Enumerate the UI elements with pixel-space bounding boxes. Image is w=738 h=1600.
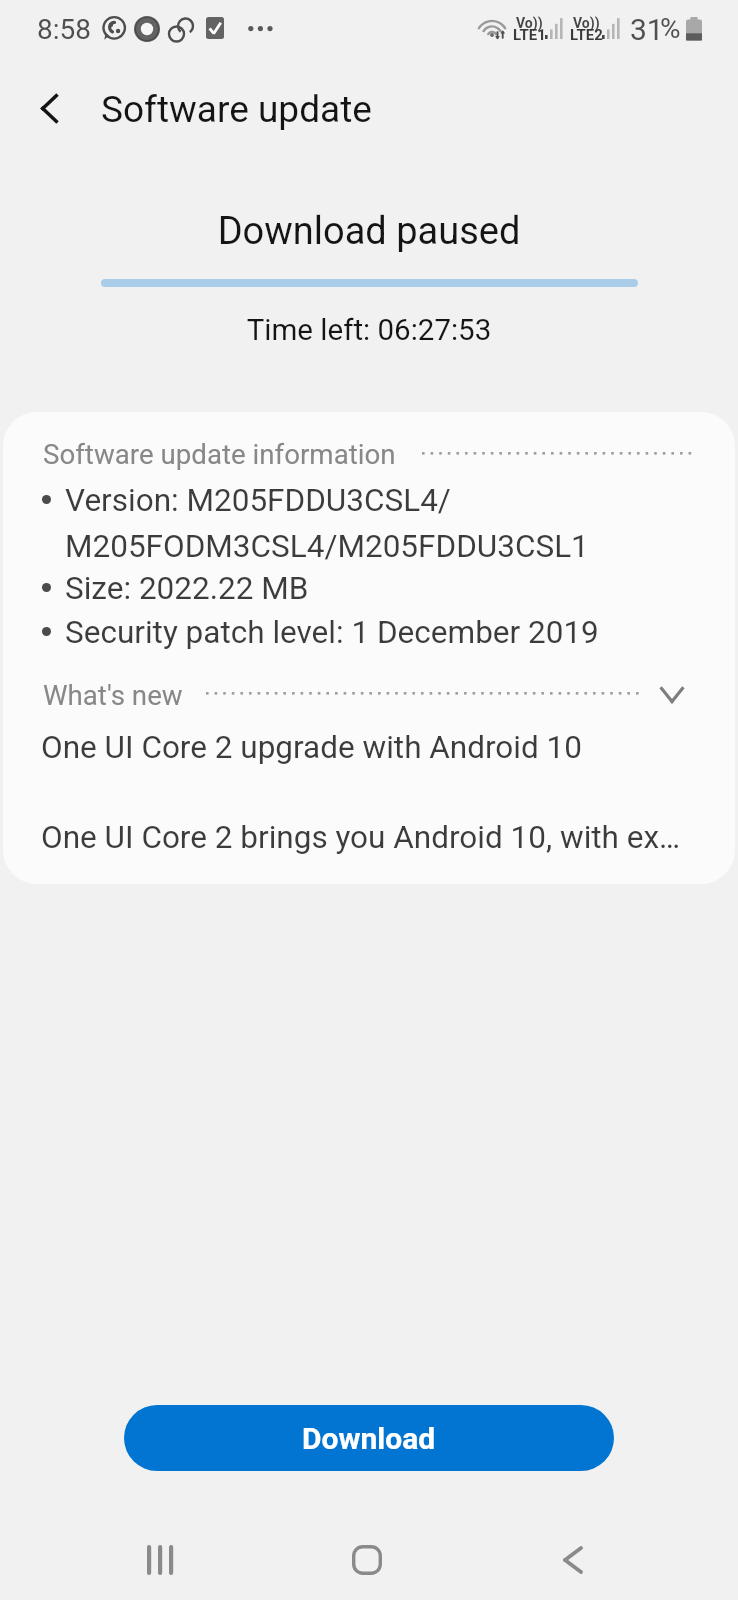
staticText: Security patch level: 1 December 2019 [65, 614, 599, 651]
staticText: Download paused [0, 209, 738, 254]
staticText: One UI Core 2 upgrade with Android 10 [41, 729, 582, 766]
staticText: Download [302, 1421, 436, 1456]
staticText: What's new [43, 679, 183, 711]
staticText: M205FODM3CSL4/M205FDDU3CSL1 [65, 528, 589, 565]
button[interactable]: Back [11, 70, 87, 146]
button[interactable]: Back [527, 1516, 619, 1600]
staticText: % [660, 12, 681, 45]
staticText: Vo)) [573, 15, 600, 31]
staticText: Software update information [43, 438, 396, 470]
staticText: Time left: 06:27:53 [0, 313, 738, 348]
button[interactable]: Expand What's new [648, 671, 696, 719]
staticText: Version: M205FDDU3CSL4/ [65, 482, 451, 519]
staticText: LTE1 [513, 26, 546, 44]
staticText: 31 [630, 12, 664, 47]
staticText: Vo)) [516, 15, 543, 31]
staticText: One UI Core 2 brings you Android 10, wit… [41, 819, 681, 856]
staticText: Size: 2022.22 MB [65, 570, 309, 607]
button[interactable]: Home [321, 1516, 413, 1600]
button[interactable]: Recents [114, 1516, 206, 1600]
button[interactable]: Download [124, 1405, 614, 1471]
staticText: LTE2 [570, 26, 603, 44]
staticText: Software update [101, 88, 372, 131]
staticText: 8:58 [37, 13, 91, 46]
